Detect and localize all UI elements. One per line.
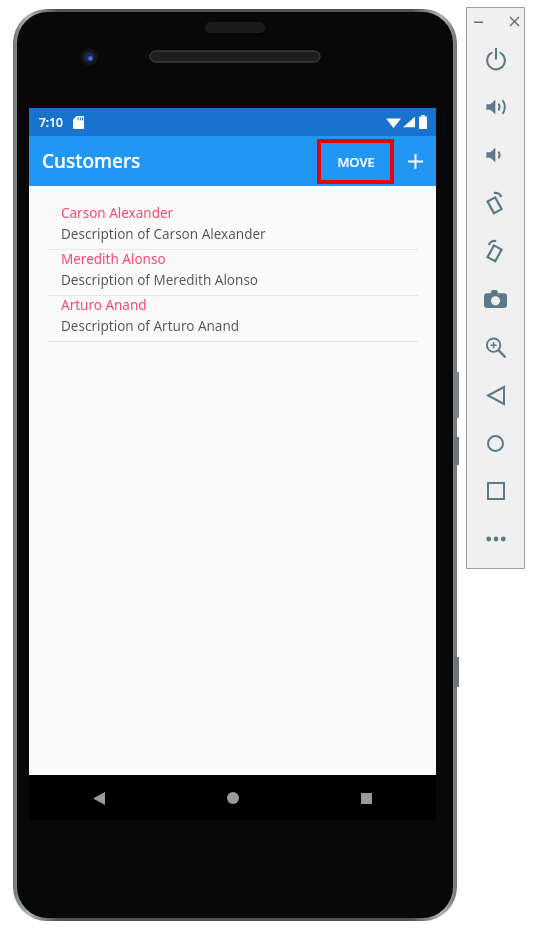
button[interactable]: Recent apps [348, 780, 384, 816]
button[interactable]: Meredith Alonso [29, 250, 436, 296]
button[interactable]: MOVE [317, 139, 394, 184]
staticText: Arturo Anand [61, 296, 147, 314]
staticText: 7:10 [39, 114, 63, 130]
button[interactable]: Volume up [466, 83, 525, 131]
staticText: Customers [42, 148, 141, 174]
button[interactable]: Rotate right [466, 227, 525, 275]
button[interactable]: Power [466, 35, 525, 83]
button[interactable]: Home [215, 780, 251, 816]
button[interactable]: More options [466, 515, 525, 563]
button[interactable]: Volume down [466, 131, 525, 179]
button[interactable]: Back [466, 371, 525, 419]
staticText: Description of Carson Alexander [61, 225, 266, 243]
button[interactable]: Take screenshot [466, 275, 525, 323]
staticText: Description of Arturo Anand [61, 317, 240, 335]
button[interactable]: Zoom [466, 323, 525, 371]
staticText: Description of Meredith Alonso [61, 271, 259, 289]
button[interactable]: Minimize [468, 11, 488, 31]
button[interactable]: Arturo Anand [29, 296, 436, 342]
button[interactable]: Add customer [394, 136, 436, 186]
button[interactable]: Back [81, 780, 117, 816]
button[interactable]: Rotate left [466, 179, 525, 227]
staticText: Carson Alexander [61, 204, 174, 222]
button[interactable]: Overview [466, 467, 525, 515]
staticText: Meredith Alonso [61, 250, 166, 268]
button[interactable]: Carson Alexander [29, 204, 436, 250]
button[interactable]: Close [504, 11, 524, 31]
staticText: MOVE [337, 153, 375, 171]
button[interactable]: Home [466, 419, 525, 467]
